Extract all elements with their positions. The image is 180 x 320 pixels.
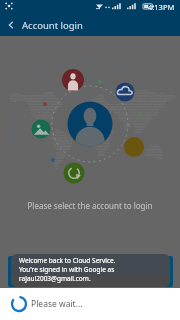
button[interactable]: Back (0, 14, 22, 36)
staticText: rajaul2003@gmail.com. (19, 274, 91, 283)
staticText: Account login (22, 19, 83, 32)
staticText: You're signed in with Google as (19, 265, 115, 274)
staticText: Please select the account to login (0, 200, 180, 211)
staticText: Please wait... (31, 298, 83, 310)
staticText: Welcome back to Cloud Service. (19, 256, 116, 265)
staticText: 4:13PM (148, 2, 175, 12)
